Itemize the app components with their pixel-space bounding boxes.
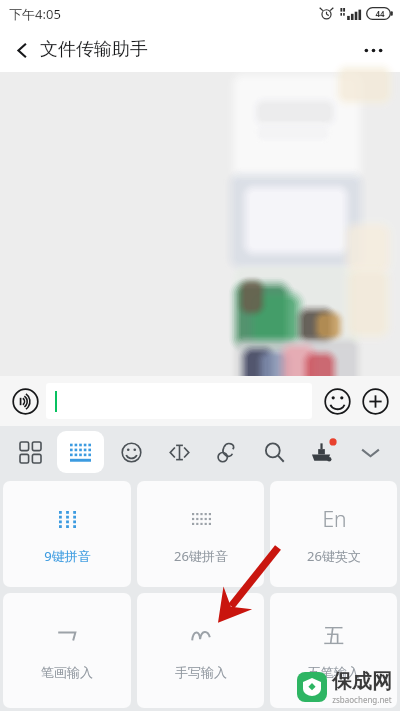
staticText: 9键拼音 [44, 547, 91, 565]
button[interactable]: Hide keyboard [349, 431, 391, 473]
staticText: zsbaocheng.net [332, 694, 392, 705]
button[interactable]: Emoticons [110, 431, 152, 473]
button[interactable]: 五 [270, 593, 397, 708]
button[interactable]: 手写输入 [137, 593, 264, 708]
button[interactable]: 9键拼音 [3, 481, 131, 587]
staticText: 26键英文 [307, 547, 361, 565]
staticText: 五 [324, 624, 344, 649]
button[interactable]: Text editing [158, 431, 200, 473]
button[interactable]: Clipboard [205, 431, 247, 473]
button[interactable]: Keyboard [57, 431, 104, 473]
button[interactable]: Emoji [319, 383, 355, 419]
button[interactable]: Back [2, 30, 42, 70]
button[interactable]: 笔画输入 [3, 593, 131, 708]
staticText: 保成网 [332, 669, 392, 694]
staticText: 手写输入 [175, 664, 227, 680]
button[interactable]: Apps [9, 431, 51, 473]
button[interactable]: More options [352, 29, 394, 71]
button[interactable]: 26键拼音 [137, 481, 264, 587]
staticText: 笔画输入 [41, 664, 93, 680]
button[interactable]: More functions [357, 383, 393, 419]
button[interactable]: Themes [301, 431, 343, 473]
staticText: 26键拼音 [174, 547, 228, 565]
button[interactable]: Voice input [7, 383, 43, 419]
button[interactable]: Search [253, 431, 295, 473]
staticText: 44 [375, 8, 385, 19]
staticText: 五笔输入 [308, 664, 360, 680]
button[interactable]: En [270, 481, 397, 587]
staticText: 下午4:05 [9, 5, 61, 23]
staticText: En [322, 505, 347, 534]
staticText: 文件传输助手 [40, 38, 148, 61]
button[interactable] [46, 383, 312, 419]
